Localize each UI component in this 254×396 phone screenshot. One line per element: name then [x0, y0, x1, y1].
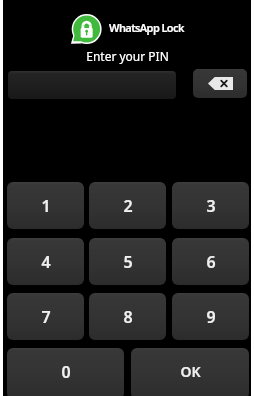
button[interactable]	[8, 71, 176, 99]
staticText: 9	[206, 306, 216, 328]
button[interactable]: 4	[7, 238, 84, 285]
button[interactable]: 2	[89, 182, 166, 229]
button[interactable]: 8	[89, 293, 166, 340]
button[interactable]: 7	[7, 293, 84, 340]
staticText: 8	[123, 306, 133, 328]
staticText: 3	[206, 195, 216, 217]
button[interactable]: 1	[7, 182, 84, 229]
staticText: 2	[123, 195, 133, 217]
button[interactable]: 5	[89, 238, 166, 285]
button[interactable]: Backspace	[193, 69, 247, 98]
button[interactable]: 0	[7, 348, 124, 396]
button[interactable]: 6	[172, 238, 249, 285]
staticText: 7	[41, 306, 51, 328]
staticText: WhatsApp Lock	[109, 20, 184, 35]
staticText: Enter your PIN	[86, 48, 169, 64]
button[interactable]: OK	[131, 348, 249, 396]
staticText: OK	[180, 362, 201, 381]
button[interactable]: 3	[172, 182, 249, 229]
button[interactable]: 9	[172, 293, 249, 340]
staticText: 4	[41, 251, 51, 273]
staticText: 0	[61, 361, 71, 383]
staticText: 1	[41, 195, 51, 217]
staticText: 6	[206, 251, 216, 273]
staticText: 5	[123, 251, 133, 273]
